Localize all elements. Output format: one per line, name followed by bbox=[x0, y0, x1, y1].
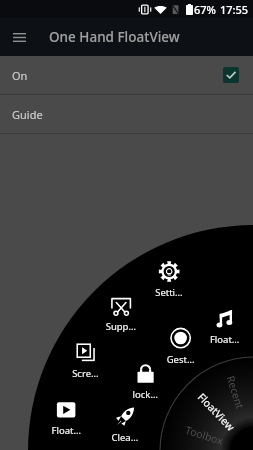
staticText: On bbox=[12, 68, 28, 83]
button[interactable]: Guide bbox=[0, 95, 253, 133]
staticText: Guide bbox=[12, 107, 43, 122]
button[interactable]: Float… bbox=[47, 393, 87, 429]
staticText: 67% bbox=[194, 2, 216, 17]
button[interactable]: Clea… bbox=[105, 400, 145, 436]
button[interactable]: Scre… bbox=[66, 337, 106, 373]
button[interactable]: Gest… bbox=[161, 322, 201, 358]
staticText: 17:55 bbox=[220, 2, 249, 17]
button[interactable]: On bbox=[0, 56, 253, 94]
staticText: One Hand FloatView bbox=[49, 28, 180, 46]
button[interactable]: Setti… bbox=[149, 256, 189, 292]
button[interactable]: Enable one hand float view bbox=[223, 67, 239, 83]
button[interactable]: Open navigation menu bbox=[0, 18, 39, 56]
button[interactable]: Supp… bbox=[101, 290, 141, 326]
button[interactable]: Float… bbox=[205, 303, 245, 339]
button[interactable]: lock… bbox=[126, 358, 166, 394]
